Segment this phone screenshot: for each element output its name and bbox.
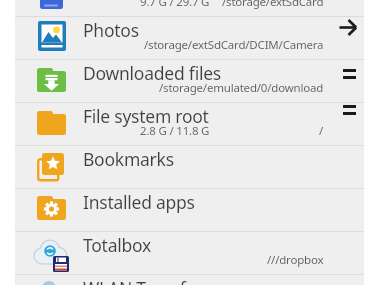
staticText: ///dropbox bbox=[267, 252, 324, 268]
button[interactable]: File system root bbox=[15, 103, 364, 146]
button[interactable]: Downloaded files bbox=[15, 60, 364, 103]
button[interactable]: Totalbox bbox=[15, 232, 364, 275]
button[interactable]: WLAN Transfer bbox=[15, 275, 364, 285]
button[interactable]: Photos bbox=[15, 17, 364, 60]
staticText: 9.7 G / 29.7 G bbox=[140, 0, 210, 10]
staticText: /storage/extSdCard bbox=[222, 0, 324, 10]
staticText: Photos bbox=[83, 18, 139, 42]
staticText: File system root bbox=[83, 104, 209, 128]
staticText: Installed apps bbox=[83, 190, 195, 214]
staticText: /storage/emulated/0/download bbox=[159, 80, 324, 96]
staticText: Bookmarks bbox=[83, 147, 174, 171]
staticText: Downloaded files bbox=[83, 61, 221, 85]
staticText: WLAN Transfer bbox=[83, 276, 203, 285]
staticText: / bbox=[319, 123, 324, 139]
staticText: Totalbox bbox=[83, 233, 151, 257]
button[interactable]: 9.7 G / 29.7 G bbox=[15, 0, 364, 17]
staticText: /storage/extSdCard/DCIM/Camera bbox=[144, 37, 324, 53]
button[interactable]: Installed apps bbox=[15, 189, 364, 232]
button[interactable]: Bookmarks bbox=[15, 146, 364, 189]
staticText: 2.8 G / 11.8 G bbox=[140, 123, 210, 139]
